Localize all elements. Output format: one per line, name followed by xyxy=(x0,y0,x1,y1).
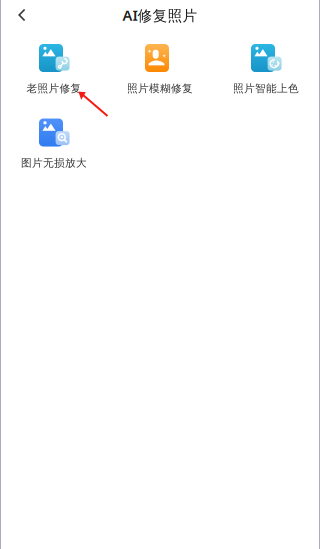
staticText: AI修复照片 xyxy=(122,5,197,25)
staticText: 老照片修复 xyxy=(26,82,81,95)
button[interactable]: 照片智能上色 xyxy=(213,44,319,97)
button[interactable]: Back xyxy=(7,0,37,30)
button[interactable]: 图片无损放大 xyxy=(1,118,107,171)
button[interactable]: 照片模糊修复 xyxy=(107,44,213,97)
staticText: 照片模糊修复 xyxy=(127,82,193,95)
button[interactable]: 老照片修复 xyxy=(1,44,107,97)
staticText: 照片智能上色 xyxy=(233,82,299,95)
staticText: 图片无损放大 xyxy=(21,156,87,170)
